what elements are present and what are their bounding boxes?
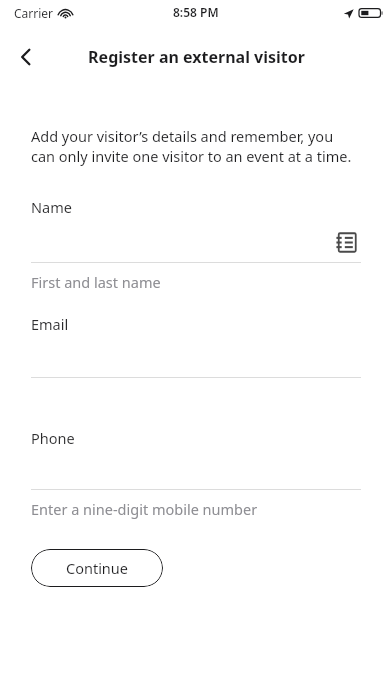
staticText: 8:58 PM [173,4,219,20]
button[interactable]: Continue [31,549,163,587]
staticText: Add your visitor’s details and remember,… [31,126,352,167]
staticText: Continue [66,558,128,578]
button[interactable]: Back [6,37,46,77]
staticText: First and last name [31,272,161,292]
staticText: Phone [31,428,75,448]
staticText: Email [31,314,69,334]
button[interactable]: Choose from contacts [331,227,361,257]
staticText: Enter a nine-digit mobile number [31,499,258,519]
staticText: Name [31,197,72,217]
staticText: Carrier [14,5,54,21]
staticText: Register an external visitor [88,46,305,68]
